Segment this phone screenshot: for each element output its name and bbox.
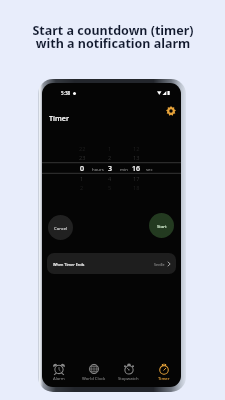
staticText: Stopwatch bbox=[118, 376, 139, 382]
button[interactable]: World Clock bbox=[76, 357, 111, 387]
staticText: Alarm bbox=[53, 376, 65, 382]
staticText: 0 bbox=[80, 164, 85, 174]
staticText: 17 bbox=[133, 175, 140, 183]
staticText: Start bbox=[157, 223, 167, 229]
button[interactable]: Alarm bbox=[42, 357, 76, 387]
staticText: World Clock bbox=[82, 376, 106, 382]
staticText: min bbox=[120, 166, 128, 172]
button[interactable]: Settings bbox=[162, 102, 180, 120]
button[interactable]: Timer bbox=[47, 111, 71, 125]
staticText: sec bbox=[146, 166, 153, 172]
button[interactable]: Timer bbox=[146, 357, 181, 387]
staticText: Timer bbox=[49, 113, 69, 123]
staticText: 16 bbox=[132, 164, 141, 174]
staticText: 18 bbox=[133, 184, 140, 192]
staticText: hours bbox=[92, 166, 104, 172]
staticText: 1 bbox=[108, 145, 112, 153]
staticText: 2 bbox=[108, 154, 112, 162]
button[interactable]: Cancel bbox=[48, 215, 73, 240]
staticText: 12 bbox=[133, 145, 140, 153]
staticText: 2 bbox=[80, 184, 84, 192]
staticText: 1 bbox=[80, 175, 84, 183]
button[interactable]: Start bbox=[149, 213, 174, 238]
button[interactable]: When Timer Ends bbox=[47, 253, 176, 274]
staticText: Cancel bbox=[54, 225, 68, 231]
staticText: 22 bbox=[79, 145, 86, 153]
staticText: When Timer Ends bbox=[53, 262, 85, 267]
button[interactable]: Stopwatch bbox=[111, 357, 146, 387]
staticText: 4 bbox=[108, 175, 112, 183]
staticText: 23 bbox=[79, 154, 86, 162]
staticText: 5:38 bbox=[61, 90, 71, 96]
staticText: 5 bbox=[108, 184, 112, 192]
staticText: 3 bbox=[108, 164, 113, 174]
staticText: Timer bbox=[158, 376, 170, 382]
staticText: 13 bbox=[133, 154, 140, 162]
staticText: Start a countdown (timer) with a notific… bbox=[32, 22, 194, 51]
staticText: Seville bbox=[154, 262, 165, 267]
